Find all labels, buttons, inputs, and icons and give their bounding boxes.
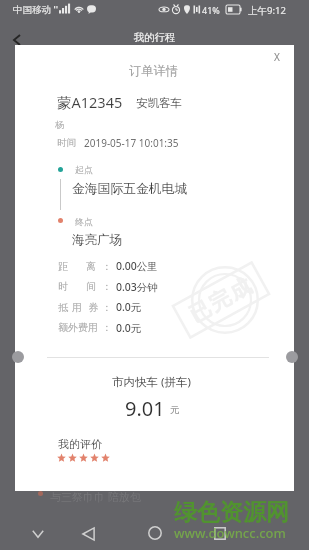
staticText: 间 <box>86 280 96 293</box>
staticText: 9.01 <box>125 395 165 422</box>
staticText: ： <box>102 321 112 334</box>
staticText: 起点 <box>75 164 93 175</box>
staticText: 已完成 <box>175 267 267 333</box>
staticText: ： <box>102 301 112 314</box>
staticText: www.downcc.com <box>174 524 286 542</box>
staticText: 距 <box>58 260 68 273</box>
staticText: X <box>274 50 280 64</box>
button[interactable]: Close <box>266 46 288 68</box>
staticText: 金海国际五金机电城 <box>72 181 188 197</box>
staticText: 终点 <box>75 216 93 227</box>
button[interactable]: Recent apps <box>200 518 240 548</box>
staticText: 蒙A12345 <box>57 92 123 112</box>
staticText: 中国移动 <box>13 4 51 16</box>
staticText: 0.0元 <box>116 321 142 335</box>
staticText: 0.03分钟 <box>116 280 158 294</box>
staticText: 安凯客车 <box>136 96 182 110</box>
staticText: ： <box>102 280 112 293</box>
staticText: 时 <box>58 280 68 293</box>
button[interactable]: Back <box>5 27 29 51</box>
staticText: 上午9:12 <box>248 4 286 17</box>
button[interactable]: Home <box>134 518 175 548</box>
staticText: ： <box>102 260 112 273</box>
staticText: 离 <box>86 260 96 273</box>
staticText: 海亮广场 <box>72 232 122 248</box>
staticText: 时间 <box>57 137 76 149</box>
staticText: 额外费用 <box>58 321 98 334</box>
staticText: 用 <box>72 301 82 314</box>
staticText: 与三祭巾巾 陪放包 <box>50 489 141 504</box>
button[interactable]: Back <box>68 519 108 549</box>
staticText: 绿色资源网 <box>174 498 289 527</box>
staticText: 我的评价 <box>58 437 102 451</box>
staticText: 订单详情 <box>129 63 179 78</box>
staticText: 0.0元 <box>116 300 142 314</box>
staticText: 杨 <box>55 119 64 130</box>
staticText: 抵 <box>58 301 68 314</box>
button[interactable]: Hide keyboard <box>18 519 57 549</box>
staticText: 2019-05-17 10:01:35 <box>84 136 179 150</box>
staticText: 41% <box>202 4 220 16</box>
staticText: 我的行程 <box>0 31 309 44</box>
staticText: 元 <box>170 404 180 416</box>
staticText: 市内快车 (拼车) <box>112 374 191 390</box>
staticText: 券 <box>88 301 98 314</box>
staticText: 0.00公里 <box>116 259 158 273</box>
